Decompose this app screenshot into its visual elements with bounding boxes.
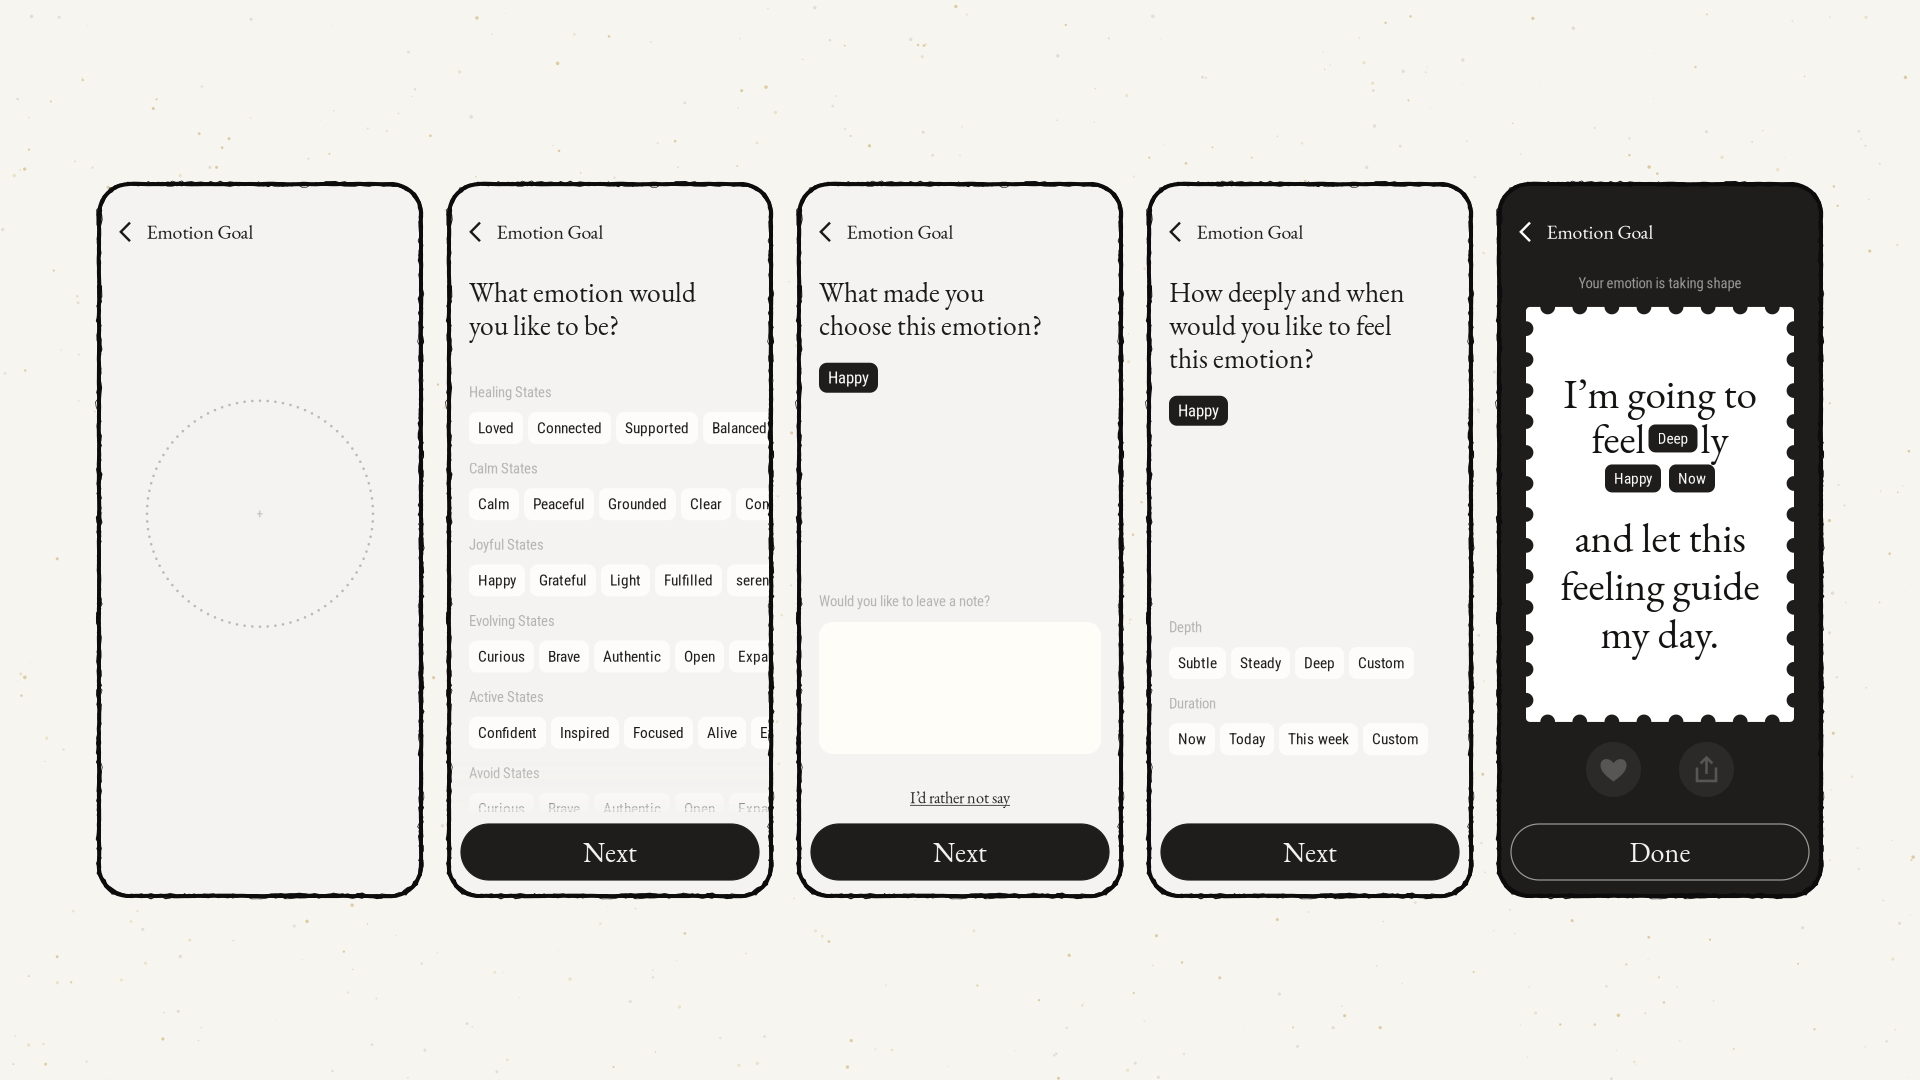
button[interactable]: Supported xyxy=(616,412,698,444)
staticText: Open xyxy=(684,647,715,665)
button[interactable]: Now xyxy=(1669,464,1715,492)
button[interactable]: Done xyxy=(1511,824,1809,880)
staticText: serene xyxy=(736,571,776,589)
button[interactable]: Confident xyxy=(469,717,546,749)
staticText: Confident xyxy=(478,724,537,742)
button[interactable]: Happy xyxy=(1169,396,1228,426)
staticText: I’d rather not say xyxy=(910,787,1010,808)
button[interactable]: Happy xyxy=(1605,464,1661,492)
button[interactable]: Emotion Goal xyxy=(1519,215,1653,249)
button[interactable]: Brave xyxy=(539,640,589,672)
button[interactable]: Curious xyxy=(469,793,534,825)
staticText: Loved xyxy=(478,419,514,437)
button[interactable]: Steady xyxy=(1231,647,1290,679)
button[interactable]: Peaceful xyxy=(524,488,594,520)
staticText: Emotion Goal xyxy=(496,219,603,245)
staticText: Connected xyxy=(537,419,602,437)
staticText: Would you like to leave a note? xyxy=(819,593,990,610)
button[interactable]: Emotion Goal xyxy=(469,215,603,249)
staticText: This week xyxy=(1288,730,1349,748)
button[interactable]: Excited xyxy=(751,717,815,749)
staticText: Supported xyxy=(625,419,689,437)
button[interactable]: Brave xyxy=(539,793,589,825)
button[interactable]: Deep xyxy=(1648,424,1697,452)
staticText: Evolving States xyxy=(469,612,555,629)
button[interactable]: Focused xyxy=(624,717,693,749)
staticText: Now xyxy=(1178,730,1206,748)
staticText: Next xyxy=(933,834,987,870)
button[interactable]: Curious xyxy=(469,640,534,672)
button[interactable]: Today xyxy=(1220,723,1274,755)
button[interactable]: Grounded xyxy=(599,488,676,520)
button[interactable]: Light xyxy=(601,564,650,596)
button[interactable]: Open xyxy=(675,793,724,825)
button[interactable]: Happy xyxy=(819,363,878,393)
staticText: Open xyxy=(684,800,715,818)
button[interactable]: Inspired xyxy=(551,717,619,749)
staticText: What emotion would xyxy=(469,274,696,310)
staticText: Now xyxy=(1678,469,1706,487)
staticText: Next xyxy=(583,834,637,870)
staticText: Content xyxy=(745,495,793,513)
staticText: Calm xyxy=(478,495,510,513)
staticText: Happy xyxy=(1178,401,1219,420)
button[interactable]: Next xyxy=(811,824,1109,880)
button[interactable]: Emotion Goal xyxy=(119,215,253,249)
staticText: Clear xyxy=(690,495,722,513)
button[interactable]: Happy xyxy=(469,564,525,596)
staticText: Next xyxy=(1283,834,1337,870)
button[interactable]: Next xyxy=(1161,824,1459,880)
staticText: feel xyxy=(1591,411,1645,465)
staticText: Authentic xyxy=(603,800,661,818)
button[interactable]: Fulfilled xyxy=(655,564,722,596)
button[interactable]: Grateful xyxy=(530,564,596,596)
button[interactable]: Emotion Goal xyxy=(819,215,953,249)
staticText: Curious xyxy=(478,647,525,665)
button[interactable]: Authentic xyxy=(594,793,670,825)
button[interactable]: Safe xyxy=(781,412,826,444)
staticText: Light xyxy=(610,571,641,589)
button[interactable]: I’d rather not say xyxy=(910,785,1010,810)
staticText: Deep xyxy=(1657,429,1688,447)
staticText: this emotion? xyxy=(1169,340,1314,376)
staticText: Emotion Goal xyxy=(146,219,253,245)
button[interactable]: Alive xyxy=(698,717,746,749)
button[interactable]: Connected xyxy=(528,412,611,444)
staticText: Your emotion is taking shape xyxy=(1578,275,1741,292)
button[interactable]: Loved xyxy=(469,412,523,444)
button[interactable]: Share xyxy=(1679,742,1734,797)
staticText: Healing States xyxy=(469,384,552,401)
staticText: Grateful xyxy=(539,571,587,589)
staticText: Authentic xyxy=(603,647,661,665)
staticText: feeling guide xyxy=(1560,558,1759,612)
staticText: Safe xyxy=(790,419,817,437)
button[interactable]: Deep xyxy=(1295,647,1344,679)
button[interactable]: serene xyxy=(727,564,785,596)
staticText: Deep xyxy=(1304,654,1335,672)
button[interactable]: Custom xyxy=(1363,723,1428,755)
button[interactable]: Subtle xyxy=(1169,647,1226,679)
staticText: Expansive xyxy=(738,647,799,665)
staticText: Happy xyxy=(828,368,869,387)
button[interactable]: Balanced xyxy=(703,412,776,444)
button[interactable]: Clear xyxy=(681,488,731,520)
staticText: How deeply and when xyxy=(1169,274,1405,310)
button[interactable]: This week xyxy=(1279,723,1358,755)
button[interactable]: Next xyxy=(461,824,759,880)
button[interactable]: Open xyxy=(675,640,724,672)
staticText: Alive xyxy=(707,724,737,742)
button[interactable]: Emotion Goal xyxy=(1169,215,1303,249)
button[interactable]: Now xyxy=(1169,723,1215,755)
button[interactable]: Favorite xyxy=(1586,742,1641,797)
staticText: Subtle xyxy=(1178,654,1217,672)
button[interactable]: Content xyxy=(736,488,802,520)
button[interactable]: Expansive xyxy=(729,640,808,672)
staticText: + xyxy=(256,506,263,521)
button[interactable]: Expansive xyxy=(729,793,808,825)
button[interactable]: Authentic xyxy=(594,640,670,672)
button[interactable]: Calm xyxy=(469,488,519,520)
staticText: Duration xyxy=(1169,695,1216,712)
button[interactable]: Custom xyxy=(1349,647,1414,679)
staticText: Custom xyxy=(1358,654,1405,672)
staticText: Steady xyxy=(1240,654,1281,672)
